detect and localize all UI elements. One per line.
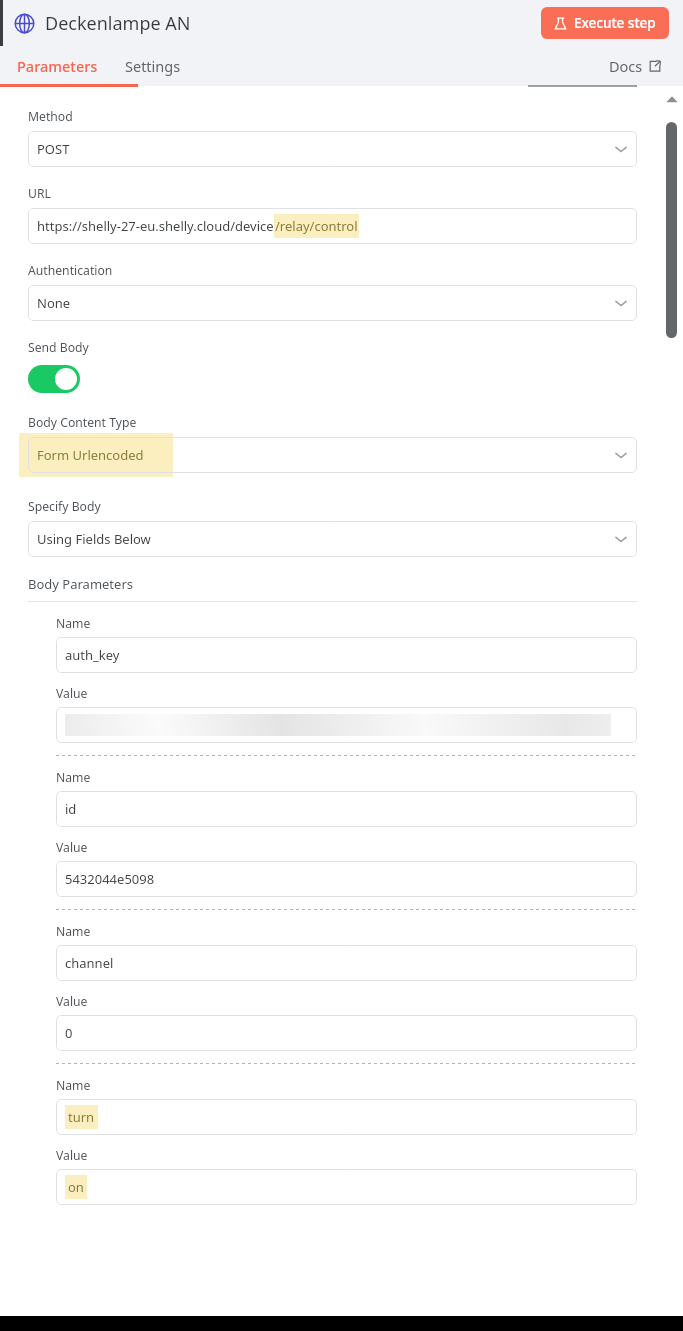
staticText: id <box>65 800 77 818</box>
button[interactable] <box>56 707 637 743</box>
other: HTTP request node <box>14 13 35 34</box>
staticText: Value <box>56 993 88 1010</box>
staticText: 0 <box>65 1024 73 1042</box>
staticText: Form Urlencoded <box>37 446 144 464</box>
button[interactable]: Docs <box>609 46 683 86</box>
staticText: https://shelly-27-eu.shelly.cloud/device <box>37 217 274 235</box>
button[interactable]: turn <box>56 1099 637 1135</box>
staticText: on <box>68 1178 84 1196</box>
button[interactable]: Send Body toggle, on <box>28 365 80 393</box>
button[interactable]: auth_key <box>56 637 637 673</box>
staticText: Settings <box>125 56 181 76</box>
button[interactable]: https://shelly-27-eu.shelly.cloud/device <box>28 208 637 244</box>
button[interactable]: Using Fields Below <box>28 521 637 557</box>
button[interactable]: Form Urlencoded <box>28 437 637 473</box>
staticText: Docs <box>609 56 643 76</box>
staticText: POST <box>37 140 70 158</box>
staticText: Authentication <box>28 262 113 279</box>
button[interactable]: None <box>28 285 637 321</box>
staticText: Name <box>56 1077 91 1094</box>
staticText: Specify Body <box>28 498 101 515</box>
staticText: Method <box>28 108 73 125</box>
other: Open docs <box>649 60 661 72</box>
staticText: Send Body <box>28 339 89 356</box>
staticText: Value <box>56 1147 88 1164</box>
staticText: URL <box>28 185 51 202</box>
staticText: Body Parameters <box>28 575 133 593</box>
staticText: Name <box>56 769 91 786</box>
staticText: 5432044e5098 <box>65 870 155 888</box>
staticText: /relay/control <box>275 217 358 235</box>
button[interactable]: Settings <box>115 46 191 86</box>
staticText: Name <box>56 923 91 940</box>
button[interactable]: Execute step <box>541 7 669 39</box>
staticText: Value <box>56 839 88 856</box>
staticText: Body Content Type <box>28 414 137 431</box>
button[interactable]: Parameters <box>0 46 115 86</box>
staticText: turn <box>68 1108 95 1126</box>
staticText: Value <box>56 685 88 702</box>
staticText: auth_key <box>65 646 120 664</box>
staticText: None <box>37 294 71 312</box>
button[interactable]: on <box>56 1169 637 1205</box>
button[interactable]: 5432044e5098 <box>56 861 637 897</box>
button[interactable]: 0 <box>56 1015 637 1051</box>
button[interactable]: POST <box>28 131 637 167</box>
button[interactable]: channel <box>56 945 637 981</box>
staticText: Execute step <box>574 14 656 32</box>
staticText: Deckenlampe AN <box>45 11 191 36</box>
staticText: Parameters <box>17 56 98 76</box>
staticText: Name <box>56 615 91 632</box>
staticText: channel <box>65 954 114 972</box>
staticText: Using Fields Below <box>37 530 151 548</box>
button[interactable]: id <box>56 791 637 827</box>
